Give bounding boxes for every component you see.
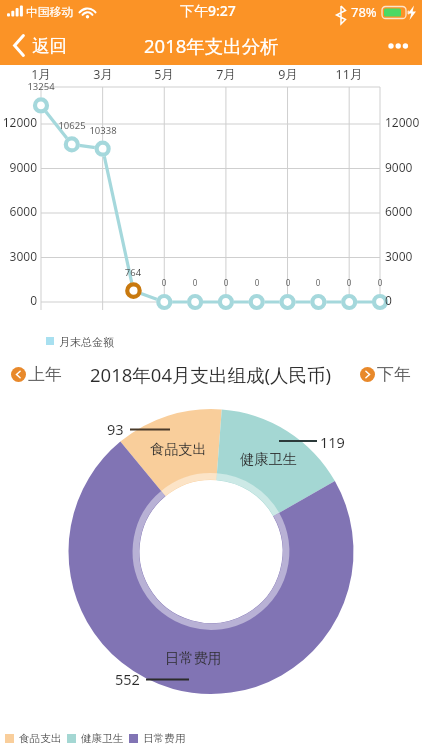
staticText: 中国移动	[26, 5, 74, 20]
staticText: 11月	[329, 66, 369, 83]
staticText: 2018年04月支出组成(人民币)	[90, 362, 332, 387]
staticText: 返回	[32, 35, 67, 57]
button[interactable]: Next year	[352, 359, 422, 390]
staticText: 1月	[21, 66, 61, 83]
staticText: 0	[331, 277, 367, 288]
other: Next year	[360, 367, 375, 382]
staticText: 0	[362, 277, 398, 288]
staticText: 6000	[385, 203, 413, 219]
staticText: 552	[115, 669, 140, 689]
staticText: 月末总金额	[59, 335, 114, 349]
staticText: 9月	[268, 66, 308, 83]
button[interactable]: Previous year	[0, 359, 70, 390]
button[interactable]: More options	[377, 30, 422, 62]
staticText: 0	[239, 277, 275, 288]
staticText: 78%	[351, 3, 377, 21]
staticText: 日常费用	[165, 649, 222, 667]
staticText: 9000	[1, 159, 37, 175]
staticText: 日常费用	[143, 732, 186, 745]
staticText: 0	[385, 292, 392, 308]
staticText: 0	[300, 277, 336, 288]
staticText: 5月	[144, 66, 184, 83]
staticText: 3000	[385, 248, 413, 264]
staticText: 93	[107, 419, 124, 439]
button[interactable]: 返回	[0, 30, 77, 61]
staticText: 9000	[385, 159, 413, 175]
staticText: 3000	[1, 248, 37, 264]
staticText: 10625	[54, 119, 90, 132]
staticText: 10338	[85, 124, 121, 137]
staticText: 0	[146, 277, 182, 288]
staticText: 3月	[83, 66, 123, 83]
staticText: 下午9:27	[180, 1, 236, 20]
staticText: 2018年支出分析	[144, 33, 279, 58]
staticText: 12000	[1, 114, 37, 130]
other: Previous year	[11, 367, 26, 382]
staticText: 上年	[28, 364, 62, 385]
staticText: 健康卫生	[240, 450, 297, 468]
staticText: 0	[177, 277, 213, 288]
staticText: 下年	[377, 364, 411, 385]
staticText: 7月	[206, 66, 246, 83]
staticText: 健康卫生	[81, 732, 124, 745]
staticText: 13254	[23, 80, 59, 93]
staticText: 0	[1, 292, 37, 308]
staticText: 6000	[1, 203, 37, 219]
staticText: 0	[208, 277, 244, 288]
staticText: 12000	[385, 114, 420, 130]
staticText: 食品支出	[19, 732, 62, 745]
staticText: 食品支出	[150, 440, 207, 458]
staticText: 0	[270, 277, 306, 288]
staticText: 764	[115, 266, 151, 279]
staticText: 119	[320, 432, 345, 452]
